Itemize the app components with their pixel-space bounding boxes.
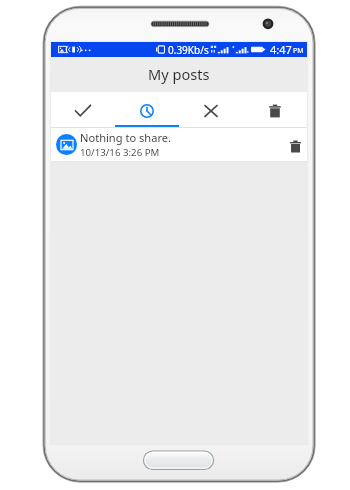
- button[interactable]: Deleted: [243, 92, 307, 127]
- staticText: 4:47: [270, 42, 292, 57]
- button[interactable]: Approved: [51, 92, 115, 127]
- staticText: PM: [293, 46, 304, 56]
- button[interactable]: Pending: [115, 92, 179, 127]
- staticText: 10/13/16 3:26 PM: [80, 146, 160, 159]
- button[interactable]: Delete: [284, 134, 306, 156]
- staticText: 0.39Kb/s: [168, 43, 209, 57]
- button[interactable]: Nothing to share.: [51, 128, 307, 161]
- staticText: Nothing to share.: [80, 130, 172, 145]
- button[interactable]: Rejected: [179, 92, 243, 127]
- staticText: My posts: [148, 64, 210, 84]
